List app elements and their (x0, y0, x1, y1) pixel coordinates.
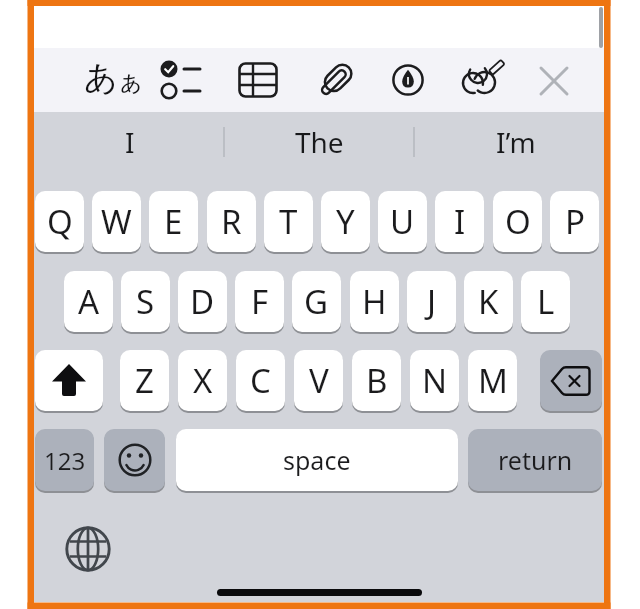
staticText: O (505, 199, 531, 244)
button[interactable]: K (464, 271, 513, 332)
button[interactable] (540, 350, 602, 411)
button[interactable]: E (149, 191, 198, 252)
staticText: return (498, 443, 573, 477)
button[interactable]: N (410, 350, 459, 411)
staticText: G (304, 279, 329, 324)
button[interactable]: M (468, 350, 517, 411)
button[interactable]: The (228, 112, 410, 172)
staticText: あ (84, 57, 118, 99)
staticText: ぁ (117, 64, 144, 97)
button[interactable] (64, 525, 112, 573)
button[interactable]: I (40, 112, 220, 172)
button[interactable]: R (207, 191, 256, 252)
staticText: E (164, 199, 183, 244)
button[interactable] (217, 589, 422, 596)
button[interactable]: L (521, 271, 570, 332)
staticText: The (295, 123, 344, 161)
button[interactable]: Q (35, 191, 84, 252)
staticText: X (193, 358, 213, 403)
button[interactable]: B (352, 350, 401, 411)
button[interactable] (35, 350, 103, 411)
button[interactable]: 123 (35, 429, 94, 491)
staticText: I (125, 123, 135, 161)
staticText: I (454, 199, 466, 244)
staticText: 123 (44, 444, 86, 477)
button[interactable] (538, 65, 570, 97)
staticText: F (251, 279, 269, 324)
staticText: U (390, 199, 415, 244)
button[interactable]: J (407, 271, 456, 332)
staticText: T (279, 199, 298, 244)
staticText: Y (336, 199, 355, 244)
button[interactable]: I’m (424, 112, 608, 172)
staticText: H (362, 279, 387, 324)
button[interactable]: S (121, 271, 170, 332)
staticText: K (478, 279, 499, 324)
button[interactable]: Y (321, 191, 370, 252)
button[interactable]: あ (84, 52, 144, 108)
button[interactable] (392, 64, 424, 96)
button[interactable] (238, 62, 278, 98)
button[interactable]: space (176, 429, 458, 491)
button[interactable] (34, 48, 604, 112)
staticText: B (366, 358, 388, 403)
staticText: C (250, 358, 271, 403)
staticText: S (136, 279, 155, 324)
button[interactable]: Z (120, 350, 169, 411)
staticText: Z (135, 358, 154, 403)
staticText: D (190, 279, 215, 324)
staticText: Q (47, 199, 73, 244)
staticText: L (537, 279, 555, 324)
button[interactable] (316, 60, 356, 100)
staticText: P (565, 199, 585, 244)
staticText: space (283, 443, 351, 477)
button[interactable]: A (64, 271, 113, 332)
button[interactable] (462, 60, 504, 100)
staticText: N (422, 358, 448, 403)
button[interactable]: I (435, 191, 484, 252)
staticText: A (78, 279, 100, 324)
button[interactable]: U (378, 191, 427, 252)
button[interactable]: return (468, 429, 602, 491)
button[interactable]: D (178, 271, 227, 332)
staticText: V (309, 358, 329, 403)
staticText: I’m (496, 123, 536, 161)
button[interactable]: H (350, 271, 399, 332)
button[interactable]: O (493, 191, 542, 252)
button[interactable]: V (294, 350, 343, 411)
button[interactable] (158, 58, 202, 102)
button[interactable]: T (264, 191, 313, 252)
button[interactable]: W (92, 191, 141, 252)
button[interactable]: C (236, 350, 285, 411)
staticText: J (427, 279, 437, 324)
button[interactable]: G (292, 271, 341, 332)
staticText: W (101, 199, 132, 244)
button[interactable]: F (235, 271, 284, 332)
staticText: M (478, 358, 508, 403)
button[interactable]: P (550, 191, 599, 252)
staticText: R (221, 199, 242, 244)
button[interactable]: X (178, 350, 227, 411)
button[interactable] (104, 429, 165, 491)
